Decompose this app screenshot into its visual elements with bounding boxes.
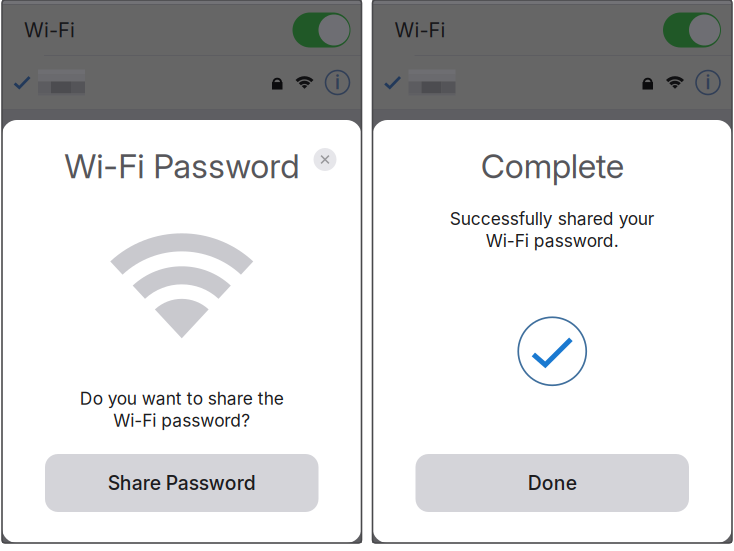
staticText: Wi-Fi password? <box>113 410 250 431</box>
staticText: Wi-Fi <box>394 18 445 42</box>
staticText: i <box>335 71 340 94</box>
button[interactable]: Close <box>313 148 336 171</box>
button[interactable]: Done <box>415 454 689 512</box>
button[interactable]: Wi-Fi <box>372 5 732 55</box>
staticText: Share Password <box>108 471 256 495</box>
staticText: Wi-Fi Password <box>64 146 299 186</box>
button[interactable]: i <box>372 56 732 109</box>
button[interactable]: i <box>2 56 361 109</box>
button[interactable]: Wi-Fi <box>2 5 361 55</box>
staticText: Complete <box>481 146 624 186</box>
button[interactable]: Share Password <box>45 454 318 512</box>
staticText: Successfully shared your <box>450 208 655 229</box>
staticText: Wi-Fi password. <box>486 230 619 251</box>
staticText: Wi-Fi <box>24 18 75 42</box>
staticText: i <box>705 71 710 94</box>
staticText: Done <box>528 471 577 495</box>
staticText: Do you want to share the <box>80 388 284 409</box>
